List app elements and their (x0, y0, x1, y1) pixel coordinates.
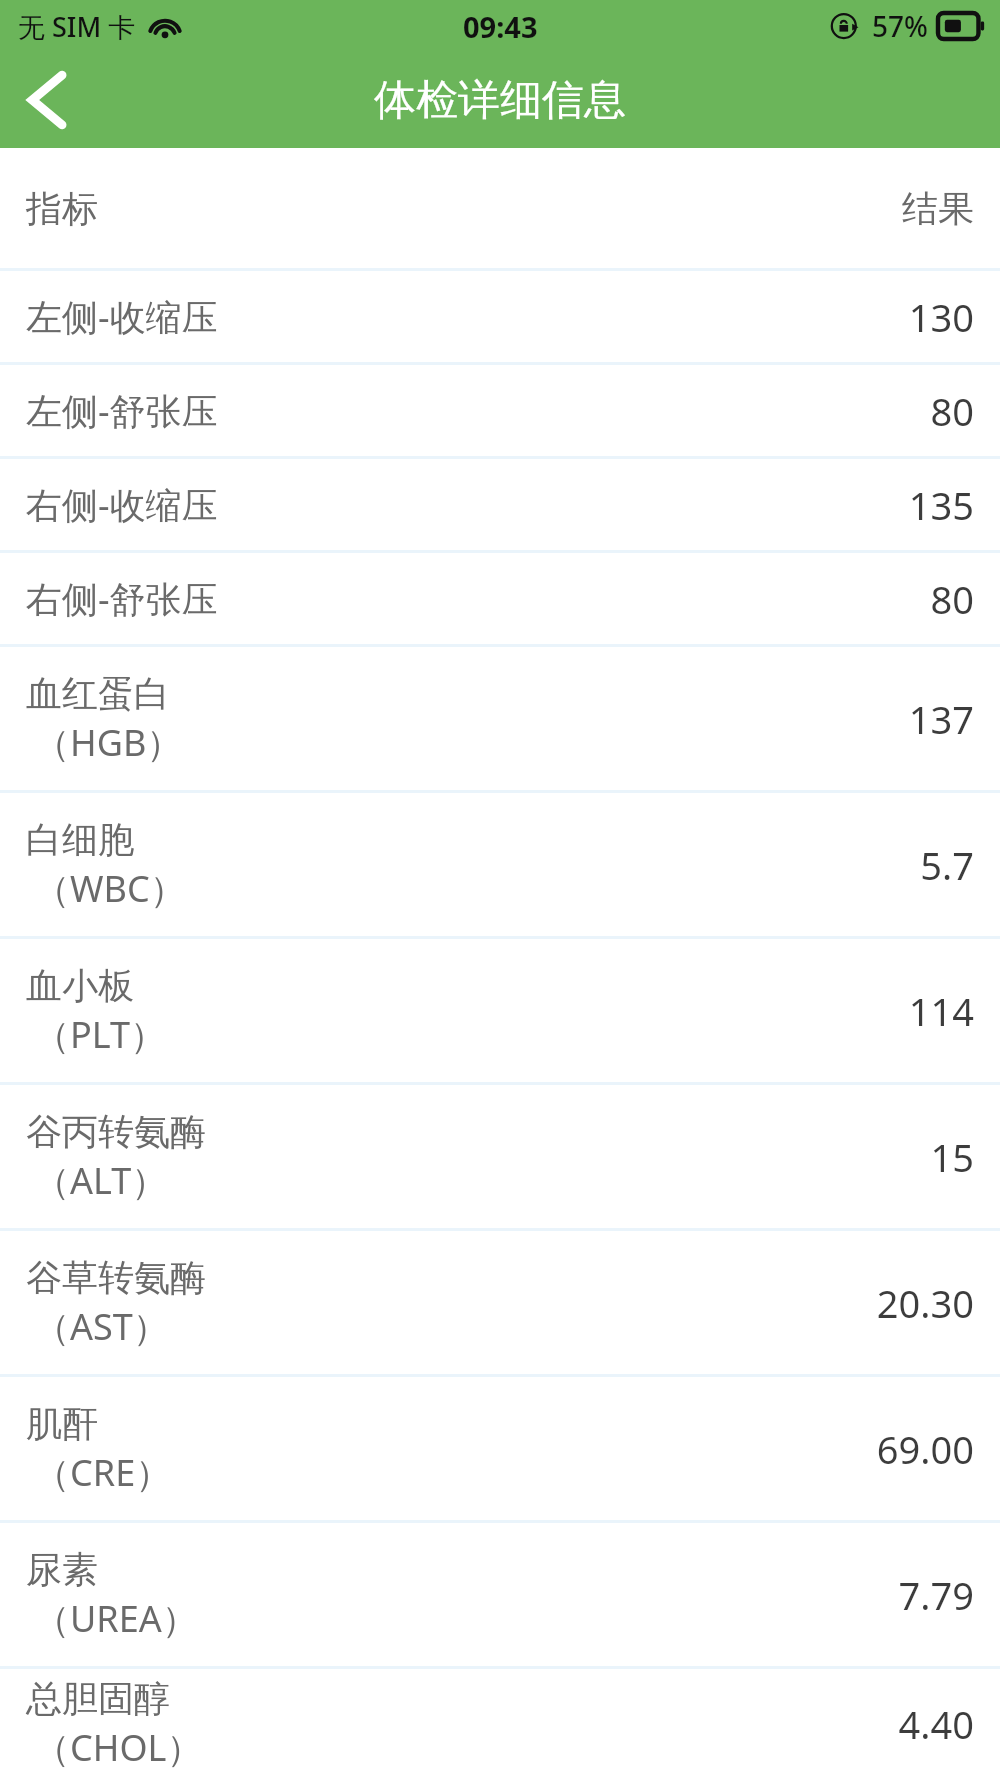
button[interactable]: 尿素 (0, 1523, 1000, 1666)
staticText: 69.00 (876, 1423, 974, 1475)
button[interactable]: 左侧-舒张压 (0, 365, 1000, 456)
staticText: 7.79 (898, 1569, 974, 1621)
staticText: 白细胞 (26, 817, 134, 862)
staticText: 谷丙转氨酶 (26, 1109, 206, 1154)
staticText: 总胆固醇 (26, 1676, 170, 1721)
staticText: 80 (930, 385, 974, 437)
staticText: （WBC） (34, 864, 186, 913)
staticText: （PLT） (34, 1010, 166, 1059)
button[interactable]: 右侧-舒张压 (0, 553, 1000, 644)
staticText: 20.30 (876, 1277, 974, 1329)
staticText: （CHOL） (34, 1723, 203, 1772)
button[interactable]: 血红蛋白 (0, 647, 1000, 790)
staticText: （UREA） (34, 1594, 198, 1643)
staticText: （CRE） (34, 1448, 172, 1497)
staticText: （HGB） (34, 718, 183, 767)
staticText: 指标 (26, 186, 98, 231)
staticText: 5.7 (920, 839, 974, 891)
staticText: 血小板 (26, 963, 134, 1008)
staticText: 结果 (902, 186, 974, 231)
staticText: 114 (908, 985, 974, 1037)
button[interactable]: Back (0, 52, 96, 148)
staticText: 137 (908, 693, 974, 745)
staticText: 09:43 (463, 7, 538, 46)
button[interactable]: 谷草转氨酶 (0, 1231, 1000, 1374)
staticText: 无 SIM 卡 (18, 8, 136, 45)
button[interactable]: 白细胞 (0, 793, 1000, 936)
button[interactable]: 总胆固醇 (0, 1669, 1000, 1778)
staticText: 80 (930, 573, 974, 625)
staticText: 右侧-收缩压 (26, 480, 218, 529)
button[interactable]: 肌酐 (0, 1377, 1000, 1520)
staticText: 谷草转氨酶 (26, 1255, 206, 1300)
staticText: 血红蛋白 (26, 671, 170, 716)
staticText: （AST） (34, 1302, 169, 1351)
staticText: 右侧-舒张压 (26, 574, 218, 623)
button[interactable]: 左侧-收缩压 (0, 271, 1000, 362)
staticText: 肌酐 (26, 1401, 98, 1446)
staticText: （ALT） (34, 1156, 168, 1205)
button[interactable]: 血小板 (0, 939, 1000, 1082)
staticText: 左侧-收缩压 (26, 292, 218, 341)
staticText: 体检详细信息 (374, 74, 626, 127)
staticText: 尿素 (26, 1547, 98, 1592)
staticText: 15 (930, 1131, 974, 1183)
button[interactable]: 右侧-收缩压 (0, 459, 1000, 550)
staticText: 57% (872, 7, 928, 45)
staticText: 130 (908, 291, 974, 343)
staticText: 4.40 (898, 1698, 974, 1750)
staticText: 左侧-舒张压 (26, 386, 218, 435)
staticText: 135 (908, 479, 974, 531)
button[interactable]: 谷丙转氨酶 (0, 1085, 1000, 1228)
